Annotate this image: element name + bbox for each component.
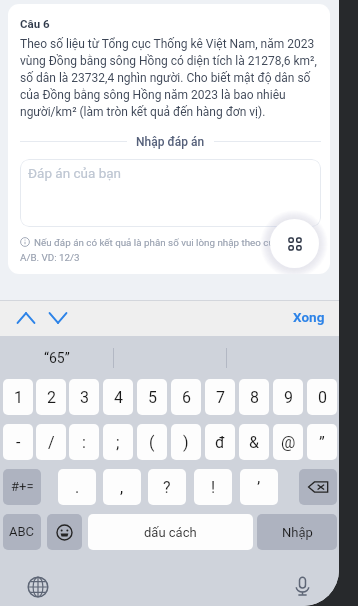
button[interactable]: 3 [69,379,99,415]
button[interactable]: #+= [3,469,41,505]
staticText: ’ [257,478,261,497]
staticText: ) [183,433,189,452]
staticText: Theo số liệu từ Tổng cục Thống kê Việt N… [20,35,321,120]
button[interactable]: ) [171,424,201,460]
staticText: ” [319,433,325,452]
button[interactable]: Xong [289,303,329,334]
button[interactable]: ’ [240,469,278,505]
staticText: 6 [182,388,191,407]
staticText: ! [211,478,216,497]
button[interactable]: đ [205,424,235,460]
button[interactable]: . [58,469,96,505]
staticText: Nếu đáp án có kết quả là phân số vui lòn… [34,236,298,248]
staticText: 1 [14,388,23,407]
staticText: 5 [148,388,157,407]
staticText: 7 [216,388,225,407]
button[interactable]: ABC [3,514,41,550]
button[interactable]: Nhập bằng giọng nói [286,570,319,603]
staticText: ? [163,478,171,497]
staticText: 8 [250,388,259,407]
button[interactable]: ; [103,424,133,460]
staticText: 0 [318,388,327,407]
button[interactable]: Nhập [257,514,337,550]
staticText: 4 [114,388,123,407]
button[interactable]: @ [273,424,303,460]
staticText: Nhập đáp án [136,134,205,149]
staticText: ( [149,433,155,452]
button[interactable]: Máy tính [270,219,319,268]
button[interactable]: Đổi bàn phím [21,570,54,603]
button[interactable]: ? [148,469,186,505]
staticText: & [249,433,259,452]
button[interactable]: Ô sau [42,302,74,334]
button[interactable]: 2 [36,379,66,415]
button[interactable]: dấu cách [88,514,253,550]
staticText: “65” [44,349,70,367]
button[interactable]: 8 [239,379,269,415]
staticText: - [16,433,21,452]
staticText: 2 [47,388,56,407]
button[interactable]: Đáp án của bạn [20,159,321,227]
staticText: @ [281,433,296,452]
button[interactable]: “65” [0,336,113,379]
staticText: #+= [11,479,34,495]
button[interactable]: ( [137,424,167,460]
button[interactable]: ” [307,424,337,460]
button[interactable]: Ô trước [10,302,42,334]
staticText: ABC [9,524,35,540]
button[interactable]: 7 [205,379,235,415]
staticText: . [75,478,80,497]
button[interactable]: ! [194,469,232,505]
button[interactable]: / [36,424,66,460]
staticText: A/B. VD: 12/3 [20,251,80,263]
button[interactable]: 9 [273,379,303,415]
staticText: : [82,433,86,452]
staticText: / [48,433,55,452]
staticText: dấu cách [144,524,197,541]
button[interactable]: Xóa [299,469,337,505]
staticText: 9 [284,388,293,407]
staticText: Câu 6 [20,16,50,31]
staticText: , [120,478,124,497]
button[interactable]: Biểu tượng cảm xúc [47,514,82,550]
button[interactable]: - [3,424,33,460]
staticText: đ [215,433,225,452]
staticText: Đáp án của bạn [28,165,122,182]
staticText: Xong [293,309,325,326]
staticText: Nhập [282,524,313,541]
button[interactable]: 1 [3,379,33,415]
button[interactable]: 5 [137,379,167,415]
button[interactable]: & [239,424,269,460]
button[interactable]: 6 [171,379,201,415]
button[interactable]: : [69,424,99,460]
button[interactable]: 0 [307,379,337,415]
button[interactable]: 4 [103,379,133,415]
staticText: 3 [80,388,89,407]
staticText: ; [116,433,120,452]
button[interactable]: , [103,469,141,505]
